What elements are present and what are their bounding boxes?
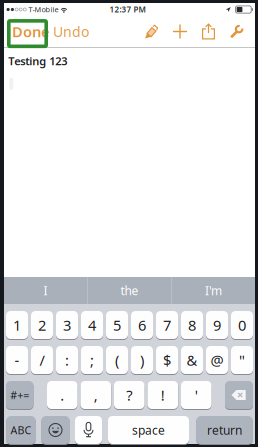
button[interactable]: . xyxy=(47,381,77,409)
button[interactable]: I'm xyxy=(172,277,255,304)
staticText: T-Mobile xyxy=(28,4,58,14)
staticText: ? xyxy=(126,385,132,405)
button[interactable]: ? xyxy=(114,381,144,409)
button[interactable] xyxy=(41,416,69,444)
staticText: $ xyxy=(163,350,171,370)
staticText: #+= xyxy=(10,388,29,402)
staticText: 6 xyxy=(138,315,146,335)
staticText: Done xyxy=(12,22,50,41)
staticText: ( xyxy=(115,350,119,370)
staticText: , xyxy=(94,385,98,405)
staticText: Undo xyxy=(53,22,89,41)
button[interactable]: $ xyxy=(156,346,178,374)
staticText: 12:37 PM xyxy=(109,4,145,15)
staticText: 4 xyxy=(88,315,96,335)
button[interactable] xyxy=(158,24,187,39)
staticText: 2 xyxy=(38,315,46,335)
staticText: / xyxy=(39,350,44,370)
staticText: I'm xyxy=(205,282,222,298)
staticText: I xyxy=(43,282,47,298)
button[interactable]: - xyxy=(6,346,28,374)
staticText: 3 xyxy=(63,315,71,335)
button[interactable]: Undo xyxy=(50,22,89,41)
staticText: 0 xyxy=(238,315,246,335)
button[interactable]: the xyxy=(88,277,171,304)
staticText: the xyxy=(120,282,138,298)
button[interactable]: ( xyxy=(106,346,128,374)
button[interactable]: I xyxy=(4,277,87,304)
staticText: 1 xyxy=(13,315,21,335)
staticText: Testing 123 xyxy=(8,53,67,69)
staticText: - xyxy=(14,350,19,370)
staticText: . xyxy=(60,385,64,405)
button[interactable] xyxy=(215,23,244,39)
button[interactable]: 9 xyxy=(206,311,228,339)
staticText: & xyxy=(186,350,197,370)
staticText: return xyxy=(207,422,242,438)
button[interactable] xyxy=(75,416,102,444)
button[interactable]: Done xyxy=(4,22,50,41)
button[interactable]: , xyxy=(80,381,111,409)
button[interactable]: ABC xyxy=(6,416,35,444)
button[interactable]: 7 xyxy=(156,311,178,339)
button[interactable]: / xyxy=(31,346,53,374)
button[interactable]: 3 xyxy=(56,311,78,339)
button[interactable]: " xyxy=(231,346,253,374)
button[interactable]: ' xyxy=(181,381,211,409)
button[interactable]: return xyxy=(196,416,252,444)
button[interactable]: 0 xyxy=(231,311,253,339)
staticText: ) xyxy=(140,350,144,370)
staticText: @ xyxy=(210,350,223,370)
staticText: space xyxy=(132,422,165,438)
button[interactable]: 1 xyxy=(6,311,28,339)
staticText: ! xyxy=(161,385,165,405)
button[interactable]: ) xyxy=(131,346,153,374)
button[interactable]: ; xyxy=(81,346,103,374)
staticText: " xyxy=(239,350,245,370)
button[interactable]: 2 xyxy=(31,311,53,339)
button[interactable] xyxy=(187,23,215,39)
button[interactable]: ! xyxy=(147,381,178,409)
button[interactable]: 5 xyxy=(106,311,128,339)
staticText: 7 xyxy=(163,315,171,335)
button[interactable]: #+= xyxy=(6,381,33,409)
staticText: ; xyxy=(90,350,94,370)
button[interactable]: & xyxy=(181,346,203,374)
button[interactable] xyxy=(225,381,253,409)
button[interactable] xyxy=(142,23,158,39)
staticText: 8 xyxy=(188,315,196,335)
staticText: ' xyxy=(195,385,198,405)
staticText: 5 xyxy=(113,315,121,335)
button[interactable]: @ xyxy=(206,346,228,374)
button[interactable]: : xyxy=(56,346,78,374)
staticText: : xyxy=(65,350,69,370)
button[interactable]: 4 xyxy=(81,311,103,339)
staticText: ABC xyxy=(10,423,31,437)
button[interactable]: space xyxy=(108,416,189,444)
button[interactable]: 8 xyxy=(181,311,203,339)
staticText: 9 xyxy=(213,315,221,335)
button[interactable]: 6 xyxy=(131,311,153,339)
